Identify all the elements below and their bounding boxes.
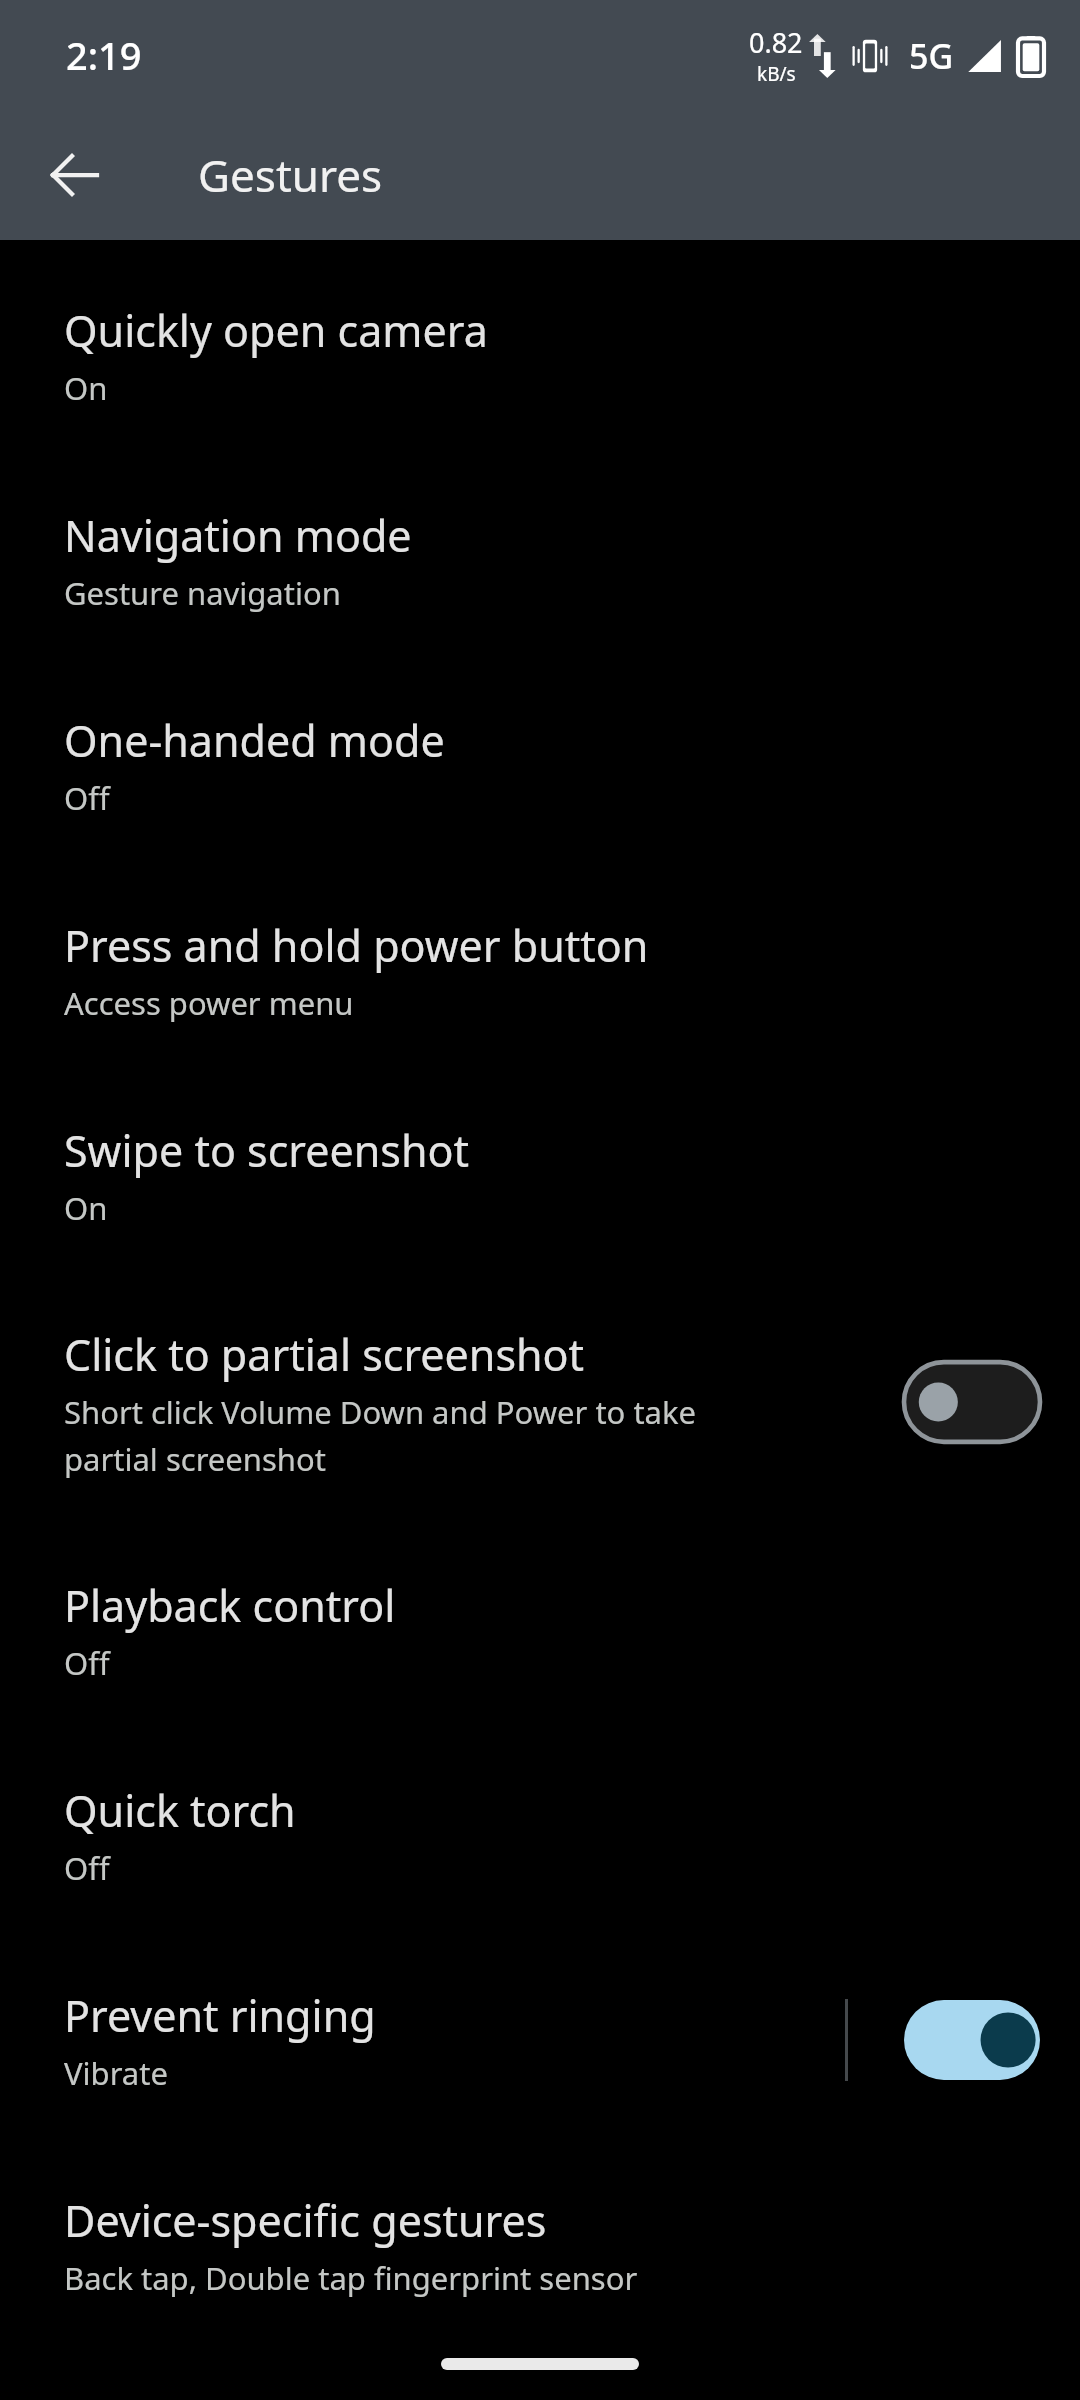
staticText: Short click Volume Down and Power to tak… xyxy=(64,1391,697,1480)
staticText: Off xyxy=(64,1642,110,1684)
staticText: Swipe to screenshot xyxy=(64,1121,470,1180)
staticText: Off xyxy=(64,777,110,819)
staticText: Playback control xyxy=(64,1576,396,1635)
button[interactable]: Navigation mode xyxy=(0,457,1080,662)
staticText: Gestures xyxy=(198,145,383,205)
staticText: Prevent ringing xyxy=(64,1986,376,2045)
staticText: On xyxy=(64,367,108,409)
button[interactable]: Quickly open camera xyxy=(0,252,1080,457)
staticText: 5G xyxy=(909,33,954,79)
button[interactable]: Press and hold power button xyxy=(0,867,1080,1072)
button[interactable]: Prevent ringing xyxy=(0,1937,1080,2142)
staticText: On xyxy=(64,1187,108,1229)
staticText: Press and hold power button xyxy=(64,916,649,975)
staticText: 0.82 xyxy=(749,24,803,61)
staticText: Vibrate xyxy=(64,2052,168,2094)
staticText: Off xyxy=(64,1847,110,1889)
staticText: Gesture navigation xyxy=(64,572,341,614)
staticText: Access power menu xyxy=(64,982,354,1024)
staticText: 2:19 xyxy=(66,29,142,81)
staticText: kB/s xyxy=(757,61,796,87)
button[interactable]: Device-specific gestures xyxy=(0,2142,1080,2347)
staticText: Quick torch xyxy=(64,1781,296,1840)
staticText: Navigation mode xyxy=(64,506,412,565)
staticText: One-handed mode xyxy=(64,711,445,770)
button[interactable]: Toggle off xyxy=(904,1360,1040,1444)
button[interactable]: One-handed mode xyxy=(0,662,1080,867)
staticText: Back tap, Double tap fingerprint sensor xyxy=(64,2257,638,2299)
button[interactable]: Quick torch xyxy=(0,1732,1080,1937)
staticText: Device-specific gestures xyxy=(64,2191,547,2250)
button[interactable]: Back xyxy=(26,126,124,224)
staticText: Quickly open camera xyxy=(64,301,488,360)
button[interactable]: Playback control xyxy=(0,1527,1080,1732)
button[interactable]: Toggle on xyxy=(904,1998,1040,2082)
button[interactable]: Click to partial screenshot xyxy=(0,1277,1080,1527)
button[interactable]: Swipe to screenshot xyxy=(0,1072,1080,1277)
staticText: Click to partial screenshot xyxy=(64,1325,585,1384)
